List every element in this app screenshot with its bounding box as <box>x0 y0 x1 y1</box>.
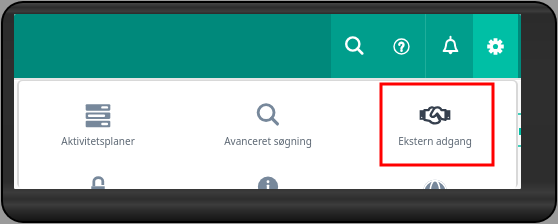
button[interactable] <box>19 153 181 189</box>
button[interactable]: Search <box>331 14 377 78</box>
staticText: Aktivitetsplaner <box>61 134 135 148</box>
button[interactable]: Notifications <box>427 14 473 78</box>
button[interactable]: Aktivitetsplaner <box>19 81 181 167</box>
staticText: Avanceret søgning <box>224 134 312 148</box>
button[interactable]: Ekstern adgang <box>352 81 516 167</box>
button[interactable]: Settings <box>472 14 518 78</box>
button[interactable] <box>352 153 516 189</box>
staticText: Ekstern adgang <box>398 134 472 148</box>
button[interactable]: Avanceret søgning <box>185 81 351 167</box>
button[interactable]: Help <box>378 14 424 78</box>
button[interactable] <box>185 153 351 189</box>
